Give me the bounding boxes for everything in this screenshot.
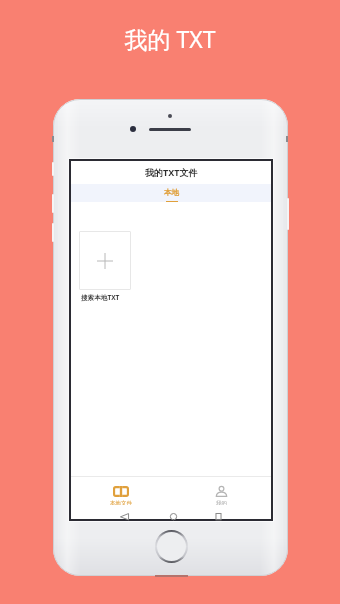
button[interactable]: Back bbox=[119, 511, 130, 522]
button[interactable]: Home bbox=[168, 511, 179, 522]
button[interactable]: 本地 bbox=[164, 188, 179, 202]
staticText: 本地 bbox=[164, 188, 179, 197]
button[interactable]: Recent apps bbox=[213, 511, 224, 522]
button[interactable]: 本地文件 bbox=[71, 477, 171, 505]
staticText: 搜索本地TXT bbox=[81, 293, 120, 302]
button[interactable]: Home button bbox=[157, 532, 186, 561]
staticText: 我的 TXT bbox=[0, 23, 340, 54]
button[interactable]: 我的TXT文件 bbox=[71, 161, 271, 184]
staticText: 本地文件 bbox=[110, 500, 132, 505]
staticText: 我的 bbox=[216, 500, 227, 505]
button[interactable]: Search local TXT bbox=[79, 231, 131, 290]
staticText: 我的TXT文件 bbox=[145, 166, 198, 178]
button[interactable]: 我的 bbox=[171, 477, 271, 505]
